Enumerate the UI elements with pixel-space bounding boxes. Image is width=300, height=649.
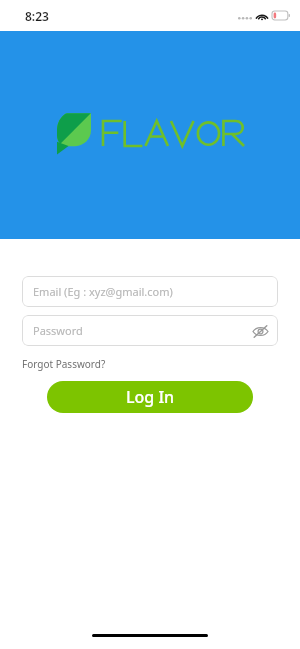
button[interactable]: Password — [22, 315, 278, 346]
button[interactable]: Forgot Password? — [22, 356, 106, 372]
staticText: Password — [33, 323, 83, 338]
staticText: Forgot Password? — [22, 357, 106, 371]
button[interactable]: Log In — [47, 381, 253, 413]
staticText: 8:23 — [25, 8, 49, 24]
button[interactable]: Show password — [250, 321, 270, 341]
staticText: Log In — [126, 386, 175, 408]
staticText: Email (Eg : xyz@gmail.com) — [33, 284, 173, 299]
button[interactable]: Email (Eg : xyz@gmail.com) — [22, 276, 278, 307]
